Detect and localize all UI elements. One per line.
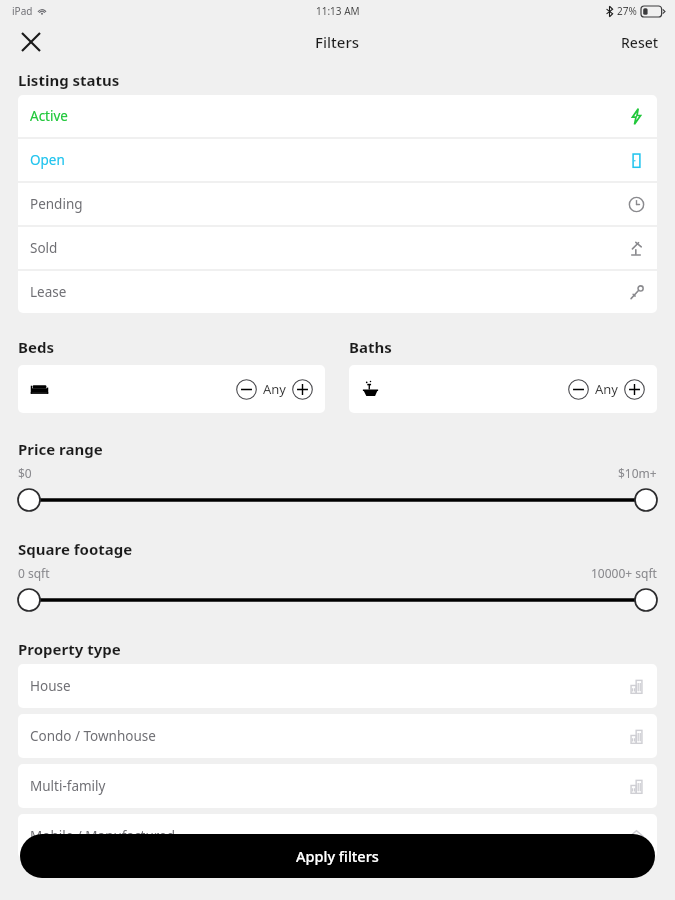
staticText: iPad (12, 4, 33, 18)
button[interactable]: Pending (18, 183, 657, 225)
staticText: Open (30, 151, 65, 169)
button[interactable]: Sold (18, 227, 657, 269)
button[interactable]: Decrease baths (568, 379, 589, 400)
staticText: Mobile / Manufactured (30, 827, 175, 845)
staticText: Apply filters (296, 846, 379, 866)
staticText: 0 sqft (18, 565, 50, 581)
staticText: Baths (349, 337, 392, 357)
staticText: Sold (30, 239, 58, 257)
staticText: 27% (617, 4, 637, 18)
button[interactable]: Open (18, 139, 657, 181)
staticText: Beds (18, 337, 54, 357)
staticText: Listing status (18, 70, 120, 90)
button[interactable]: Apply filters (20, 834, 655, 878)
staticText: House (30, 677, 71, 695)
button[interactable]: 10000+ sqft handle (631, 587, 657, 613)
button[interactable]: Reset (621, 33, 659, 52)
staticText: Price range (18, 439, 103, 459)
staticText: Lease (30, 283, 67, 301)
button[interactable]: Close (14, 25, 48, 59)
button[interactable]: Multi-family (18, 764, 657, 808)
staticText: Property type (18, 639, 121, 659)
staticText: 11:13 AM (316, 4, 360, 18)
staticText: Multi-family (30, 777, 106, 795)
staticText: $0 (18, 465, 32, 481)
button[interactable]: Mobile / Manufactured (18, 814, 657, 858)
button[interactable]: Active (18, 95, 657, 137)
staticText: Any (595, 380, 618, 398)
button[interactable]: House (18, 664, 657, 708)
staticText: Any (263, 380, 286, 398)
staticText: Pending (30, 195, 83, 213)
button[interactable]: Condo / Townhouse (18, 714, 657, 758)
button[interactable]: $0 handle (18, 487, 44, 513)
staticText: Reset (621, 33, 659, 52)
staticText: Filters (315, 32, 360, 52)
button[interactable]: Decrease beds (236, 379, 257, 400)
staticText: Active (30, 107, 68, 125)
button[interactable]: Lease (18, 271, 657, 313)
staticText: $10m+ (618, 465, 657, 481)
button[interactable]: $10m+ handle (631, 487, 657, 513)
staticText: 10000+ sqft (591, 565, 657, 581)
button[interactable]: Increase beds (292, 379, 313, 400)
button[interactable]: 0 sqft handle (18, 587, 44, 613)
staticText: Square footage (18, 539, 133, 559)
button[interactable]: Increase baths (624, 379, 645, 400)
staticText: Condo / Townhouse (30, 727, 156, 745)
